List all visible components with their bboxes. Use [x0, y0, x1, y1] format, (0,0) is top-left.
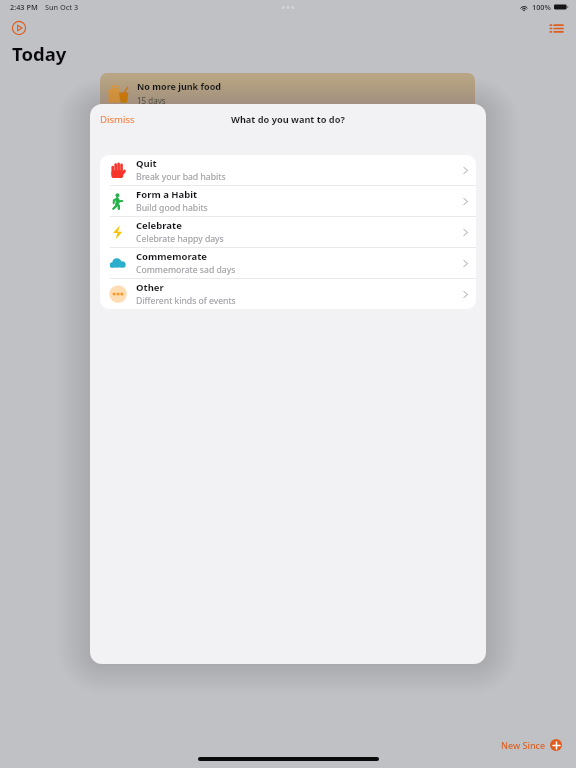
staticText: 15 days: [137, 95, 166, 106]
staticText: Different kinds of events: [136, 295, 236, 307]
button[interactable]: Timer: [9, 18, 29, 38]
button[interactable]: No more junk food: [100, 73, 475, 115]
staticText: Commemorate: [136, 250, 207, 263]
button[interactable]: Form a Habit: [100, 186, 476, 216]
staticText: Celebrate happy days: [136, 233, 224, 245]
staticText: Commemorate sad days: [136, 264, 236, 276]
button[interactable]: Commemorate: [100, 248, 476, 278]
button[interactable]: New Since: [501, 739, 562, 751]
staticText: Celebrate: [136, 219, 182, 232]
button[interactable]: List options: [546, 18, 566, 38]
staticText: Dismiss: [100, 113, 135, 126]
staticText: Build good habits: [136, 202, 208, 214]
staticText: New Since: [501, 739, 546, 751]
staticText: 100%: [532, 2, 551, 12]
staticText: 2:43 PM: [10, 2, 38, 12]
staticText: Form a Habit: [136, 188, 198, 201]
staticText: No more junk food: [137, 80, 221, 92]
staticText: What do you want to do?: [231, 113, 345, 126]
staticText: Today: [12, 41, 67, 66]
staticText: Other: [136, 281, 164, 294]
button[interactable]: Other: [100, 279, 476, 309]
staticText: Sun Oct 3: [45, 2, 79, 12]
button[interactable]: Dismiss: [92, 106, 143, 133]
staticText: Break your bad habits: [136, 171, 226, 183]
staticText: Quit: [136, 157, 157, 170]
button[interactable]: Celebrate: [100, 217, 476, 247]
button[interactable]: Quit: [100, 155, 476, 185]
